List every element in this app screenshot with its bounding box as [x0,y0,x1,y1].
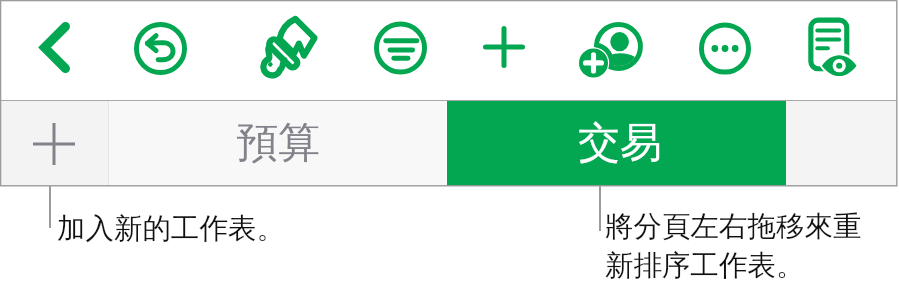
button[interactable]: Format brush [262,14,319,76]
button[interactable]: Format [374,22,427,74]
button[interactable]: More [699,23,751,74]
staticText: 將分頁左右拖移來重 新排序工作表。 [605,209,862,283]
button[interactable]: Undo [134,22,187,75]
button[interactable]: 交易 [447,101,786,186]
button[interactable]: Document options [807,17,856,77]
button[interactable]: Insert [483,26,525,68]
button[interactable]: Back [40,22,70,73]
staticText: 交易 [578,117,662,170]
button[interactable]: Add sheet [0,101,108,186]
other: Add sheet [29,119,79,169]
button[interactable]: Add collaborator [579,22,643,75]
staticText: 加入新的工作表。 [57,211,285,247]
button[interactable]: 預算 [109,101,447,186]
staticText: 預算 [236,117,320,170]
